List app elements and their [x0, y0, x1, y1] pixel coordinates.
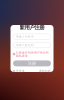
staticText: 注册 — [28, 61, 36, 66]
staticText: 遇到问题 — [39, 69, 51, 73]
staticText: 请输入手机号 — [16, 35, 34, 38]
staticText: 新用户注册 — [19, 24, 44, 31]
button[interactable]: 遇到问题 — [39, 69, 51, 73]
button[interactable]: 注册 — [13, 60, 51, 66]
staticText: 请输入验证码 — [16, 43, 34, 47]
staticText: 已阅读并同意用户协议和隐私政策 — [16, 51, 49, 57]
staticText: 账号登录 — [13, 69, 25, 73]
button[interactable]: 账号登录 — [13, 69, 25, 73]
